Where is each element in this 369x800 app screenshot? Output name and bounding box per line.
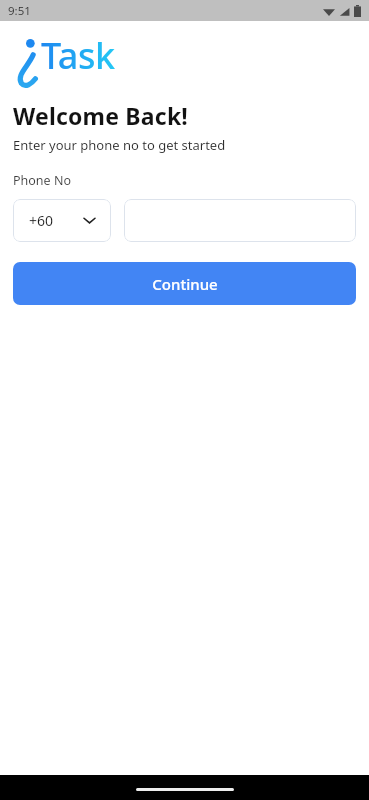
- staticText: Continue: [152, 274, 218, 294]
- button[interactable]: Phone number input: [124, 199, 356, 242]
- staticText: Welcome Back!: [13, 100, 189, 131]
- staticText: Phone No: [13, 172, 71, 189]
- button[interactable]: Continue: [13, 262, 356, 305]
- staticText: +60: [29, 211, 54, 230]
- staticText: 9:51: [8, 3, 31, 19]
- staticText: Task: [41, 31, 115, 80]
- staticText: Enter your phone no to get started: [13, 136, 226, 154]
- button[interactable]: +60: [13, 199, 111, 242]
